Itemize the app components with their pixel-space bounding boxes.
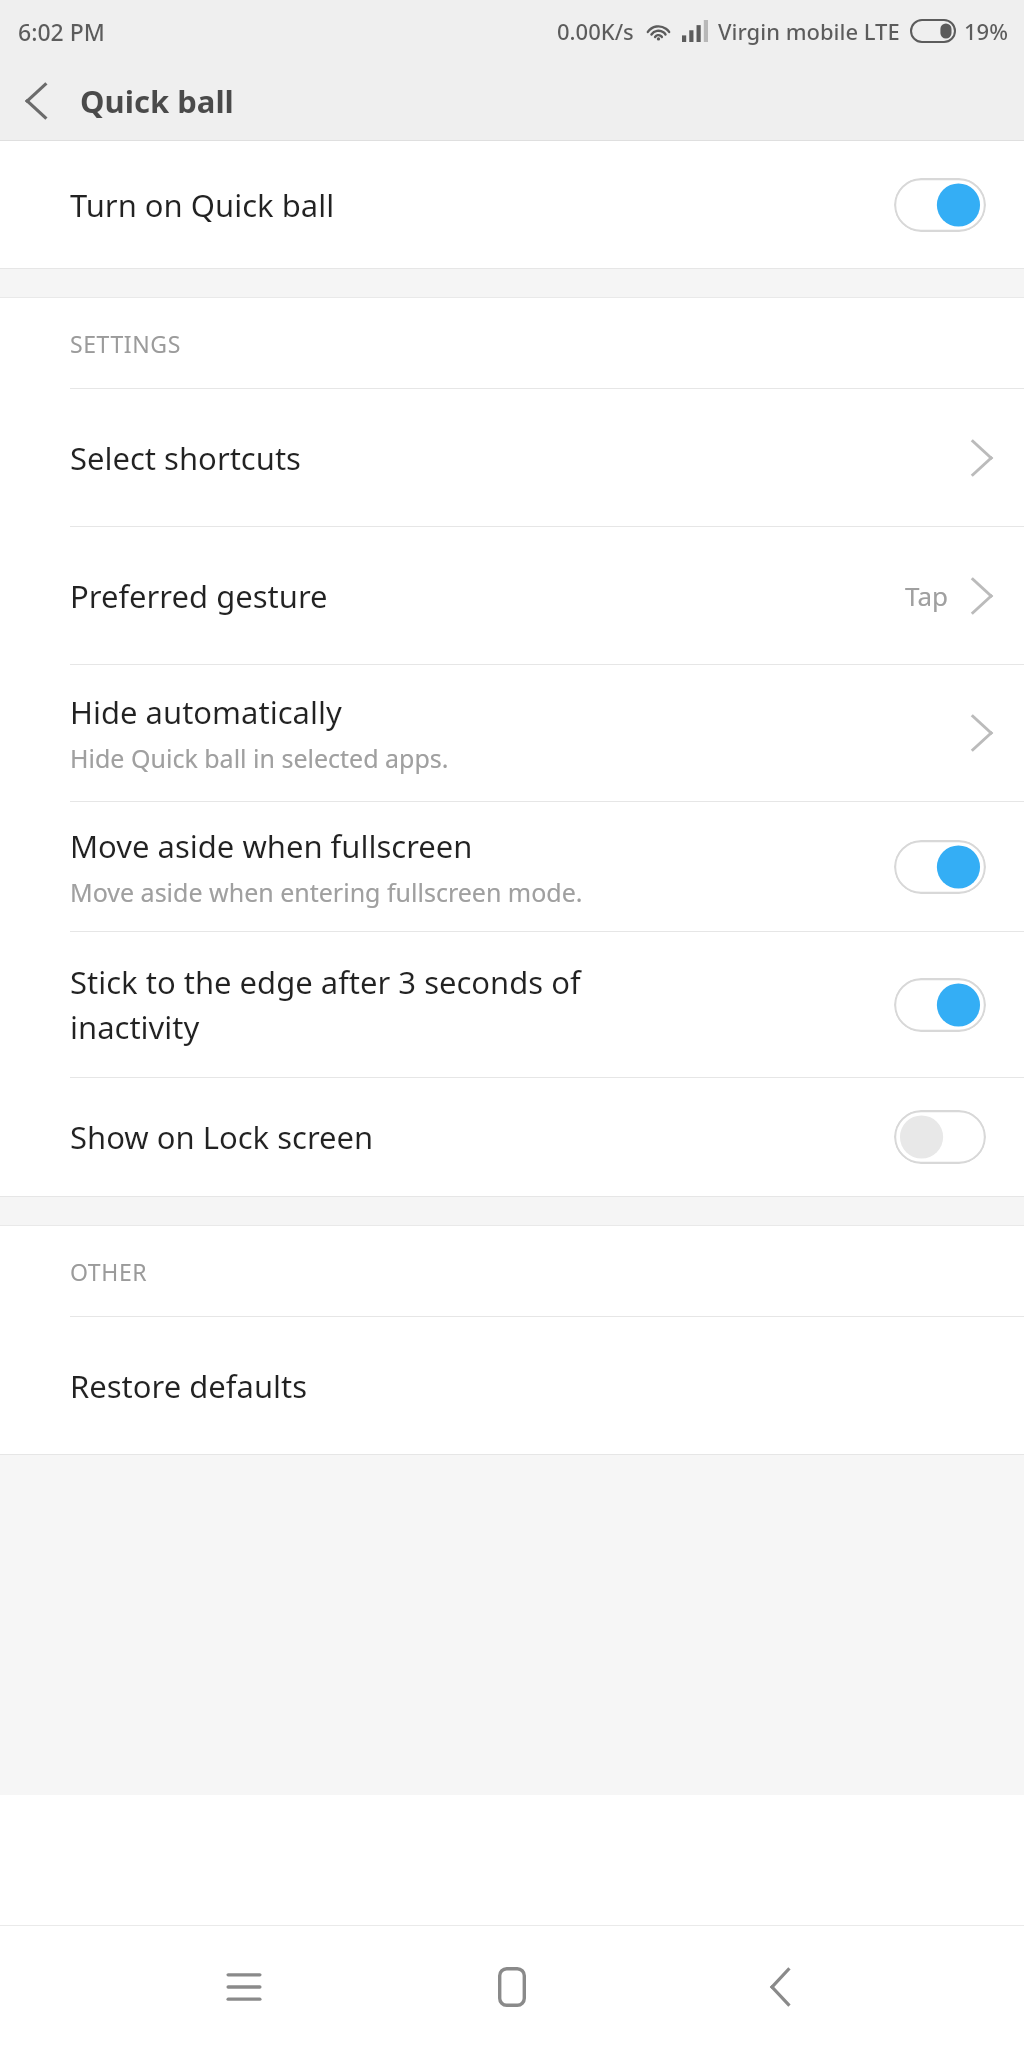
button[interactable]: On: [894, 978, 986, 1032]
button[interactable]: Turn on Quick ball: [0, 141, 1024, 268]
staticText: 19%: [964, 16, 1008, 46]
button[interactable]: Preferred gesture: [0, 527, 1024, 664]
button[interactable]: On: [894, 840, 986, 894]
staticText: 0.00K/s: [557, 16, 634, 46]
button[interactable]: Off: [894, 1110, 986, 1164]
staticText: Preferred gesture: [70, 575, 328, 617]
staticText: 6:02 PM: [18, 16, 105, 47]
button[interactable]: Stick to the edge after 3 seconds of ina…: [0, 932, 1024, 1077]
button[interactable]: Show on Lock screen: [0, 1078, 1024, 1196]
staticText: Tap: [905, 578, 948, 613]
button[interactable]: On: [894, 178, 986, 232]
button[interactable]: Move aside when fullscreen: [0, 802, 1024, 931]
button[interactable]: Select shortcuts: [0, 389, 1024, 526]
staticText: OTHER: [70, 1256, 148, 1287]
button[interactable]: Back: [0, 62, 72, 140]
button[interactable]: Restore defaults: [0, 1317, 1024, 1454]
staticText: Move aside when entering fullscreen mode…: [70, 875, 583, 909]
staticText: Restore defaults: [70, 1365, 308, 1407]
staticText: Virgin mobile LTE: [718, 16, 900, 46]
staticText: Hide automatically: [70, 691, 342, 733]
staticText: Hide Quick ball in selected apps.: [70, 741, 449, 775]
staticText: SETTINGS: [70, 328, 181, 359]
button[interactable]: Back: [720, 1926, 840, 2048]
staticText: Move aside when fullscreen: [70, 825, 473, 867]
staticText: Select shortcuts: [70, 437, 301, 479]
button[interactable]: Hide automatically: [0, 665, 1024, 801]
button[interactable]: Home: [452, 1926, 572, 2048]
staticText: Stick to the edge after 3 seconds of ina…: [70, 961, 581, 1048]
staticText: Turn on Quick ball: [70, 184, 335, 226]
button[interactable]: Recent apps: [184, 1926, 304, 2048]
staticText: Show on Lock screen: [70, 1116, 374, 1158]
staticText: Quick ball: [80, 80, 234, 122]
